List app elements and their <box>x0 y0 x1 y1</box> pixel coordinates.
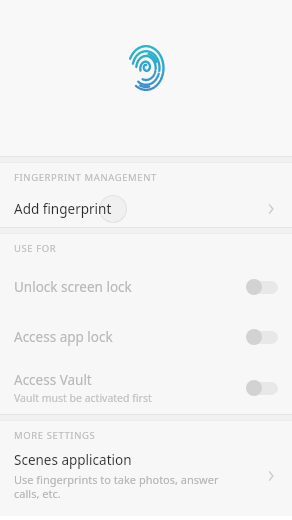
button[interactable]: Scenes application <box>0 449 292 509</box>
staticText: MORE SETTINGS <box>14 429 96 442</box>
staticText: FINGERPRINT MANAGEMENT <box>14 171 157 184</box>
button[interactable]: Unlock screen lock <box>0 262 292 312</box>
staticText: Use fingerprints to take photos, answer … <box>14 472 238 501</box>
staticText: Vault must be activated first <box>14 391 152 405</box>
button[interactable]: Access app lock <box>246 329 278 345</box>
staticText: Add fingerprint <box>14 200 266 218</box>
button[interactable]: Access Vault <box>0 362 292 414</box>
button[interactable]: Access app lock <box>0 312 292 362</box>
button[interactable]: Access Vault <box>246 380 278 396</box>
staticText: Unlock screen lock <box>14 278 132 296</box>
staticText: USE FOR <box>14 242 57 255</box>
staticText: Scenes application <box>14 451 132 469</box>
button[interactable]: Unlock screen lock <box>246 279 278 295</box>
staticText: Access app lock <box>14 328 113 346</box>
button[interactable]: Add fingerprint <box>0 191 292 227</box>
staticText: Access Vault <box>14 371 92 389</box>
